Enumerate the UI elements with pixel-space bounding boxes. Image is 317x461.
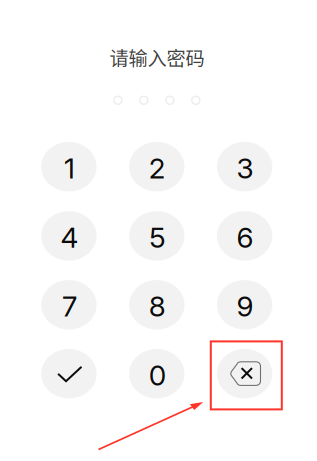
button[interactable]: 9 [201,271,288,339]
staticText: 6 [237,221,254,254]
button[interactable]: 6 [201,202,288,270]
button[interactable]: 0 [113,340,200,408]
button[interactable]: Delete [201,340,288,408]
staticText: 4 [60,221,78,254]
staticText: 1 [64,151,75,185]
staticText: 7 [62,289,77,323]
button[interactable]: 2 [113,133,200,201]
staticText: 3 [237,151,254,185]
staticText: 0 [149,358,166,392]
button[interactable]: 8 [113,271,200,339]
button[interactable]: 4 [25,202,112,270]
button[interactable]: 7 [25,271,112,339]
button[interactable]: Confirm [25,340,112,408]
button[interactable]: 5 [113,202,200,270]
staticText: 请输入密码 [109,44,204,71]
button[interactable]: 3 [201,133,288,201]
staticText: 5 [149,221,165,254]
staticText: 8 [149,289,166,323]
staticText: 2 [149,151,166,185]
button[interactable]: 1 [25,133,112,201]
staticText: 9 [237,289,254,323]
